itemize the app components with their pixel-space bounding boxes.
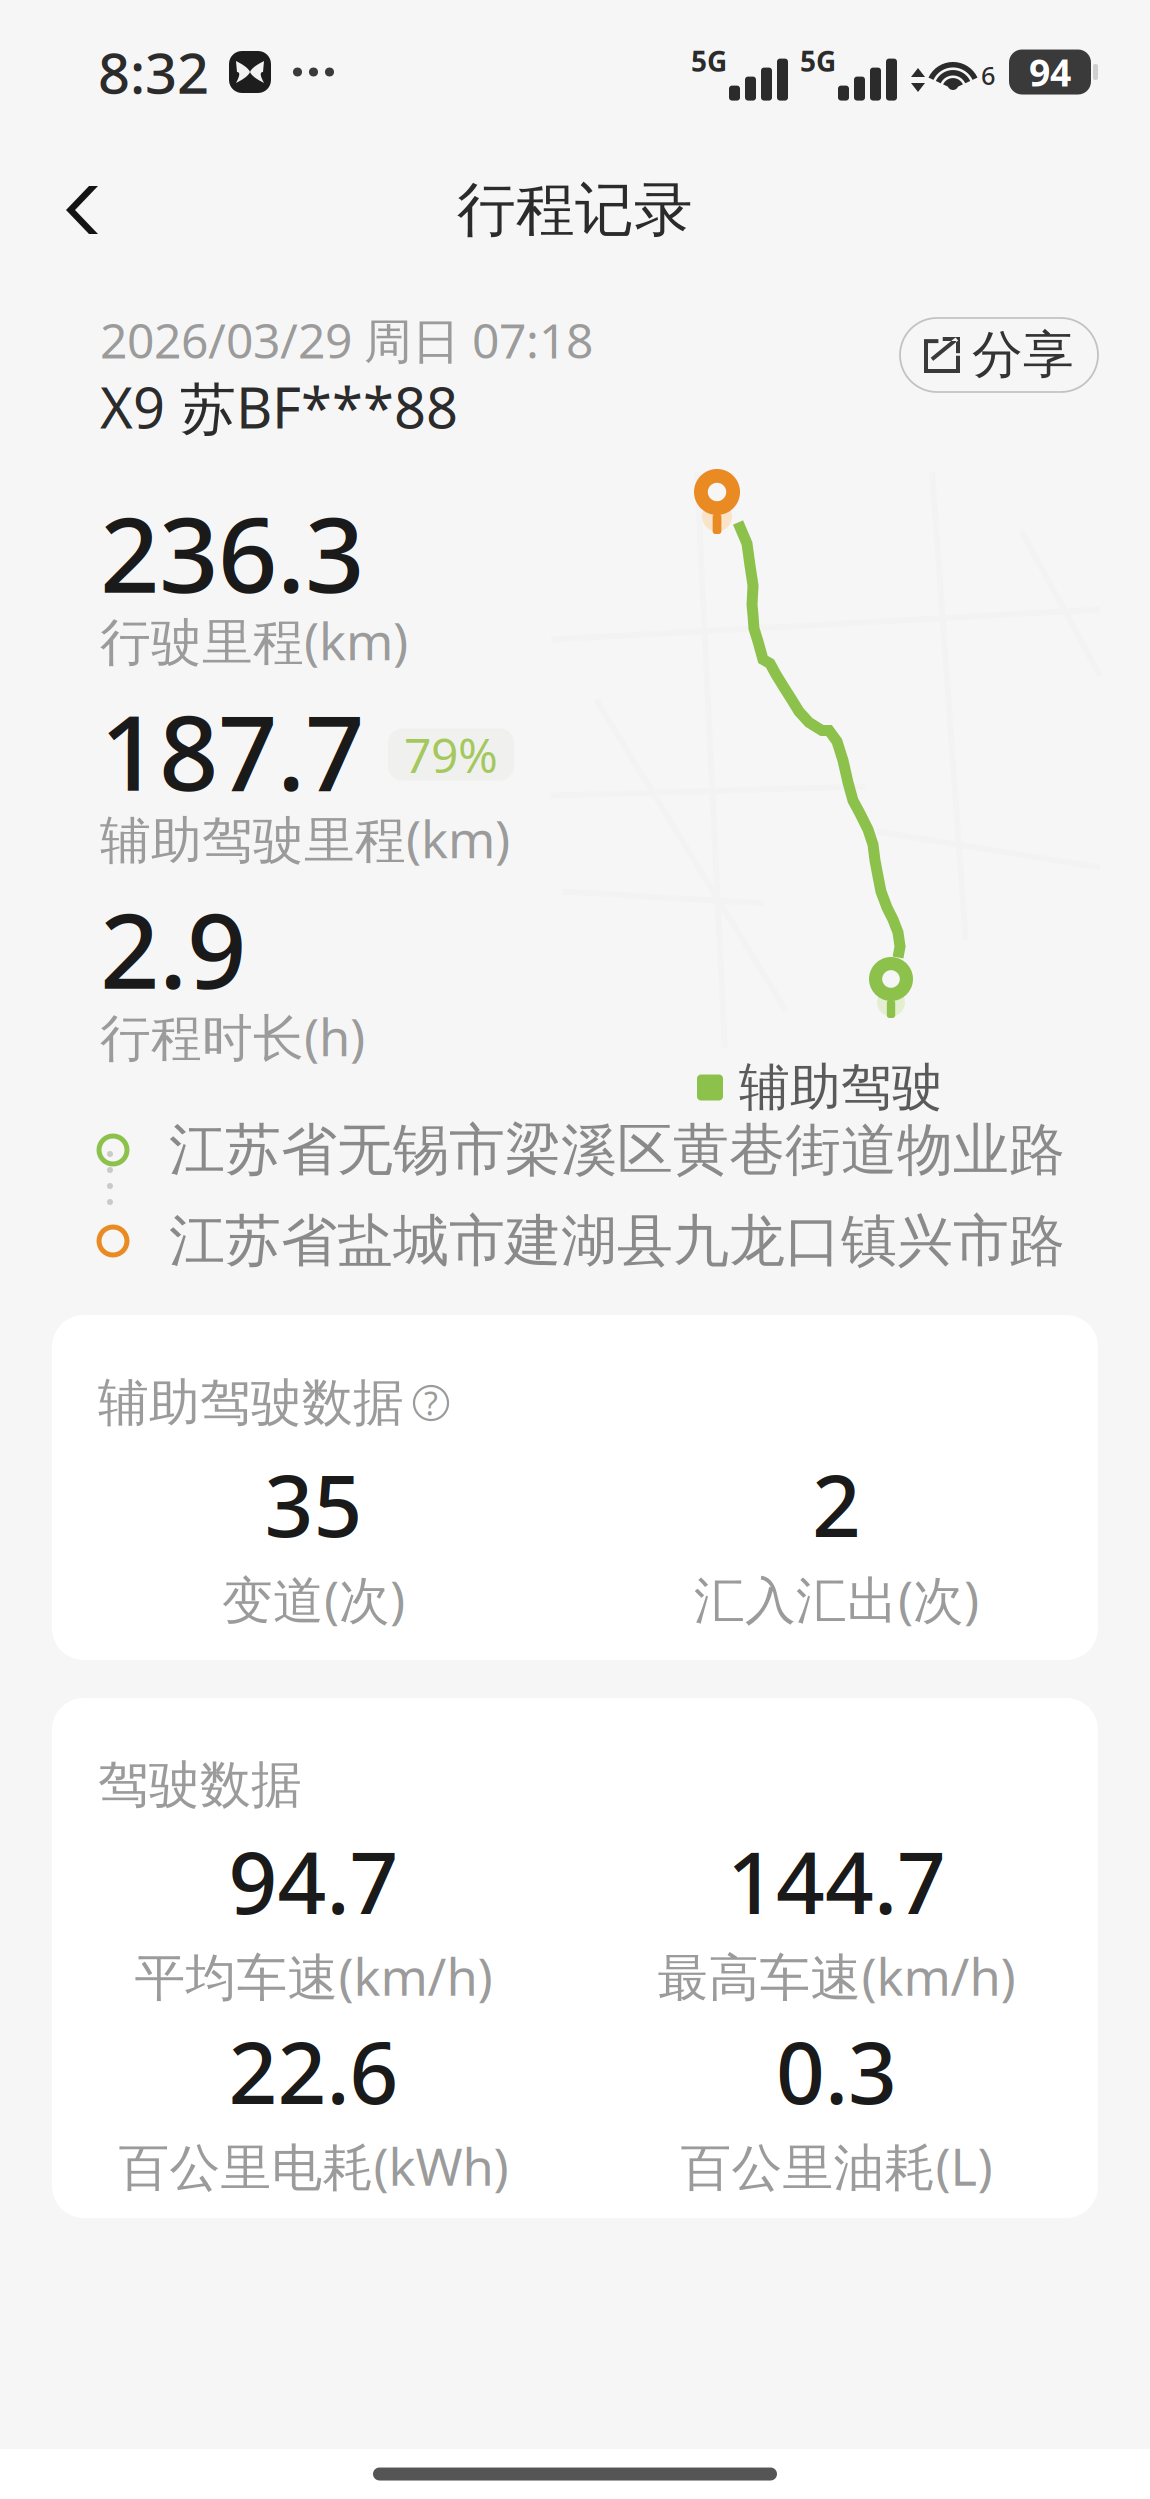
staticText: 行程时长(h): [100, 1003, 365, 1070]
staticText: 平均车速(km/h): [134, 1942, 492, 2010]
staticText: 94.7: [228, 1824, 398, 1938]
staticText: 辅助驾驶数据: [98, 1372, 404, 1434]
staticText: 187.7: [100, 681, 364, 819]
staticText: 驾驶数据: [98, 1754, 302, 1816]
staticText: 5G: [800, 42, 836, 80]
staticText: 汇入汇出(次): [694, 1565, 979, 1633]
staticText: 最高车速(km/h): [657, 1942, 1015, 2010]
staticText: 6: [981, 58, 995, 92]
button[interactable]: Back: [24, 152, 140, 268]
staticText: 35: [264, 1447, 362, 1561]
staticText: 94: [1029, 47, 1071, 97]
staticText: 8:32: [98, 35, 209, 109]
staticText: 变道(次): [222, 1565, 405, 1633]
staticText: X9 苏BF***88: [100, 370, 458, 444]
staticText: 百公里电耗(kWh): [118, 2132, 508, 2200]
staticText: 分享: [972, 324, 1074, 386]
button[interactable]: 分享: [900, 318, 1098, 392]
staticText: 辅助驾驶里程(km): [100, 805, 510, 872]
staticText: 2026/03/29 周日 07:18: [100, 308, 593, 372]
staticText: 辅助驾驶: [739, 1056, 943, 1119]
staticText: 2.9: [100, 879, 246, 1017]
staticText: 江苏省盐城市建湖县九龙口镇兴市路: [169, 1207, 1065, 1275]
staticText: 2: [812, 1447, 861, 1561]
staticText: 0.3: [776, 2014, 897, 2128]
staticText: 行驶里程(km): [100, 607, 408, 674]
staticText: 22.6: [228, 2014, 398, 2128]
staticText: ?: [424, 1382, 438, 1424]
staticText: 行程记录: [457, 174, 693, 246]
staticText: 236.3: [100, 483, 364, 621]
staticText: 144.7: [727, 1824, 946, 1938]
staticText: 江苏省无锡市梁溪区黄巷街道物业路: [169, 1116, 1065, 1184]
staticText: 5G: [691, 42, 727, 80]
staticText: 百公里油耗(L): [680, 2132, 992, 2200]
staticText: 79%: [404, 723, 498, 786]
